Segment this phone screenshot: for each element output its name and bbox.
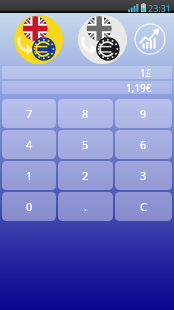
staticText: 5 [82, 137, 89, 152]
staticText: 2 [82, 168, 89, 183]
button[interactable]: 8 [58, 99, 113, 128]
button[interactable]: 1,19€ [2, 81, 172, 94]
staticText: 7 [26, 106, 33, 121]
button[interactable]: 2 [58, 161, 113, 190]
button[interactable]: Euro to Pound converter [78, 15, 127, 64]
staticText: 4 [26, 137, 33, 152]
button[interactable]: 1£ [2, 66, 172, 79]
staticText: C [140, 199, 147, 214]
button[interactable]: 3 [115, 161, 172, 190]
button[interactable]: 9 [115, 99, 172, 128]
staticText: 9 [140, 106, 147, 121]
staticText: 1 [26, 168, 33, 183]
staticText: 23:31 [148, 2, 172, 13]
staticText: 3 [140, 168, 147, 183]
staticText: 1£ [140, 66, 152, 79]
button[interactable]: . [58, 192, 113, 221]
button[interactable]: 1 [2, 161, 56, 190]
staticText: . [84, 199, 87, 214]
staticText: 6 [140, 137, 147, 152]
button[interactable]: Exchange rate chart [133, 22, 167, 56]
button[interactable]: 5 [58, 130, 113, 159]
button[interactable]: 6 [115, 130, 172, 159]
staticText: 1,19€ [126, 81, 152, 94]
button[interactable]: C [115, 192, 172, 221]
staticText: 8 [82, 106, 89, 121]
button[interactable]: Pound to Euro converter [14, 15, 63, 64]
button[interactable]: 7 [2, 99, 56, 128]
button[interactable]: 0 [2, 192, 56, 221]
button[interactable]: 4 [2, 130, 56, 159]
staticText: 0 [26, 199, 33, 214]
